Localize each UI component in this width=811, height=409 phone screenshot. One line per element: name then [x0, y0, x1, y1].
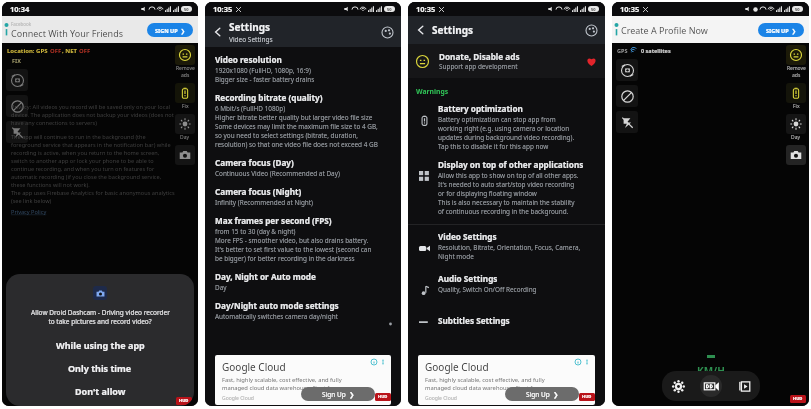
- staticText: Location: GPS: [7, 47, 50, 55]
- staticText: HUD: [582, 394, 592, 400]
- staticText: Privacy: All videos you record will be s…: [11, 103, 176, 127]
- staticText: Day, Night or Auto mode: [215, 271, 316, 282]
- staticText: Google Cloud: [425, 395, 457, 402]
- staticText: Settings: [229, 20, 270, 34]
- staticText: Video Settings: [229, 35, 273, 44]
- button[interactable]: Sign Up ❯: [301, 387, 375, 401]
- button[interactable]: Gallery: [736, 378, 752, 394]
- button[interactable]: Donate, Disable ads: [408, 44, 605, 78]
- button[interactable]: Camera control: [6, 121, 28, 143]
- button[interactable]: Only this time: [6, 362, 194, 374]
- staticText: Quality, Switch On/Off Recording: [438, 285, 537, 294]
- button[interactable]: Video resolution: [215, 54, 393, 92]
- staticText: 1920x1080 (FullHD, 1080p, 16:9): [215, 66, 311, 75]
- button[interactable]: Theme: [379, 24, 395, 40]
- staticText: Video resolution: [215, 54, 282, 65]
- staticText: 50: [795, 7, 800, 12]
- button[interactable]: Battery optimization: [408, 103, 605, 159]
- staticText: Subtitles Settings: [438, 315, 510, 326]
- staticText: Night mode: [438, 252, 474, 261]
- staticText: Facebook: [11, 21, 32, 27]
- staticText: Bigger size - faster battery drains: [215, 75, 315, 84]
- button[interactable]: Camera control: [6, 69, 28, 91]
- button[interactable]: Audio Settings: [408, 273, 605, 315]
- staticText: 0 satellites: [641, 47, 671, 54]
- staticText: 10:34: [10, 4, 30, 14]
- button[interactable]: Camera control: [6, 95, 28, 117]
- button[interactable]: Theme: [583, 22, 599, 38]
- button[interactable]: Option: [175, 83, 195, 103]
- staticText: Continuous Video (Recommended at Day): [215, 169, 340, 178]
- staticText: managed cloud data warehouse. Start free…: [425, 384, 543, 392]
- button[interactable]: Video Settings: [408, 231, 605, 273]
- button[interactable]: While using the app: [6, 339, 194, 351]
- staticText: While using the app: [56, 339, 145, 351]
- staticText: Battery optimization: [438, 103, 523, 114]
- staticText: Camera focus (Night): [215, 186, 302, 197]
- button[interactable]: Camera control: [616, 59, 638, 81]
- staticText: Remove: [176, 65, 195, 72]
- staticText: Fix: [793, 103, 800, 110]
- button[interactable]: Day/Night auto mode settings: [215, 300, 388, 329]
- staticText: working right (e.g. using camera or loca…: [438, 124, 570, 133]
- button[interactable]: Settings: [670, 378, 686, 394]
- button[interactable]: Day, Night or Auto mode: [215, 271, 393, 300]
- staticText: ads: [792, 72, 801, 79]
- staticText: from 15 to 30 (day & night): [215, 227, 296, 236]
- button[interactable]: Camera control: [616, 111, 638, 133]
- button[interactable]: Option: [175, 114, 195, 134]
- button[interactable]: Record: [700, 375, 722, 397]
- staticText: 6 Mbit/s (FullHD 1080p): [215, 104, 286, 113]
- staticText: so you need to select settings (bitrate,…: [215, 131, 359, 140]
- staticText: Sign Up ❯: [322, 390, 355, 399]
- button[interactable]: Subtitles Settings: [408, 315, 605, 335]
- staticText: Create A Profile Now: [621, 24, 708, 36]
- staticText: GPS: [617, 47, 628, 54]
- button[interactable]: Back: [209, 23, 227, 41]
- staticText: Settings: [432, 23, 473, 37]
- staticText: Automatically switches camera day/night: [215, 312, 338, 321]
- button[interactable]: Option: [786, 114, 806, 134]
- staticText: HUD: [378, 394, 388, 400]
- staticText: Camera focus (Day): [215, 157, 294, 168]
- button[interactable]: SIGN UP ❯: [758, 23, 804, 37]
- staticText: Google Cloud: [222, 395, 254, 402]
- staticText: Fix: [182, 103, 189, 110]
- staticText: Allow Droid Dashcam - Driving video reco…: [31, 308, 170, 317]
- staticText: Fast, highly scalable, cost effective, a…: [222, 376, 342, 384]
- button[interactable]: Camera focus (Night): [215, 186, 393, 215]
- staticText: Fast, highly scalable, cost effective, a…: [425, 376, 545, 384]
- staticText: Day/Night auto mode settings: [215, 300, 339, 311]
- button[interactable]: Option: [786, 83, 806, 103]
- staticText: Sign Up ❯: [526, 390, 559, 399]
- button[interactable]: Max frames per second (FPS): [215, 215, 393, 271]
- staticText: Audio Settings: [438, 273, 498, 284]
- staticText: OFF: [50, 47, 62, 55]
- button[interactable]: Don't allow: [6, 385, 194, 397]
- staticText: SIGN UP ❯: [766, 27, 797, 34]
- staticText: to take pictures and record video?: [48, 317, 152, 326]
- staticText: Max frames per second (FPS): [215, 215, 332, 226]
- button[interactable]: Option: [786, 145, 806, 165]
- staticText: Day: [791, 134, 801, 141]
- button[interactable]: Privacy Policy: [11, 208, 47, 216]
- staticText: , NET: [62, 47, 79, 55]
- staticText: Allow this app to show on top of all oth…: [438, 171, 579, 180]
- button[interactable]: Recording bitrate (quality): [215, 92, 393, 157]
- staticText: Display on top of other applications: [438, 159, 584, 170]
- staticText: Video Settings: [438, 231, 497, 242]
- staticText: Tap this to disable it for this app now: [438, 142, 549, 151]
- button[interactable]: Sign Up ❯: [505, 387, 579, 401]
- button[interactable]: Option: [175, 45, 195, 65]
- button[interactable]: Option: [786, 45, 806, 65]
- staticText: ads: [181, 72, 190, 79]
- button[interactable]: Display on top of other applications: [408, 159, 605, 224]
- button[interactable]: Option: [175, 145, 195, 165]
- staticText: The app will continue to run in the back…: [11, 133, 176, 189]
- button[interactable]: SIGN UP ❯: [147, 23, 193, 37]
- button[interactable]: Back: [412, 21, 430, 39]
- button[interactable]: Camera control: [616, 85, 638, 107]
- button[interactable]: Camera focus (Day): [215, 157, 393, 186]
- staticText: FIX: [12, 57, 21, 64]
- staticText: 50: [184, 7, 189, 12]
